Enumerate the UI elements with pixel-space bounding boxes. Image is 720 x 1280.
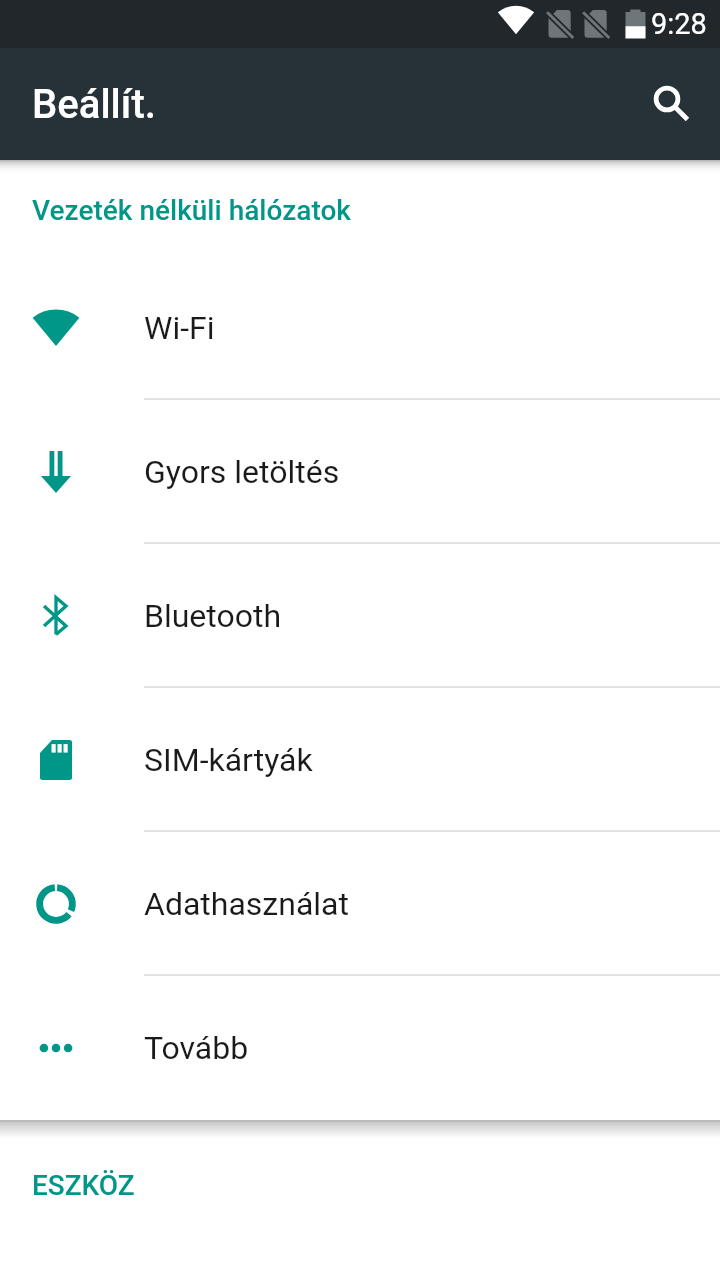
staticText: ESZKÖZ [32, 1169, 135, 1202]
staticText: Wi-Fi [144, 309, 215, 347]
staticText: SIM-kártyák [144, 741, 313, 779]
button[interactable]: SIM-kártyák [0, 688, 720, 832]
staticText: Tovább [144, 1029, 249, 1067]
button[interactable]: Wi-Fi [0, 256, 720, 400]
button[interactable]: Gyors letöltés [0, 400, 720, 544]
staticText: 9:28 [651, 7, 707, 41]
staticText: Adathasználat [144, 885, 349, 923]
button[interactable]: Bluetooth [0, 544, 720, 688]
staticText: Bluetooth [144, 597, 282, 635]
button[interactable]: Adathasználat [0, 832, 720, 976]
staticText: Gyors letöltés [144, 453, 340, 491]
staticText: Vezeték nélküli hálózatok [32, 194, 351, 227]
button[interactable]: Tovább [0, 976, 720, 1120]
staticText: Beállít. [32, 81, 156, 128]
button[interactable]: Search [627, 60, 715, 148]
